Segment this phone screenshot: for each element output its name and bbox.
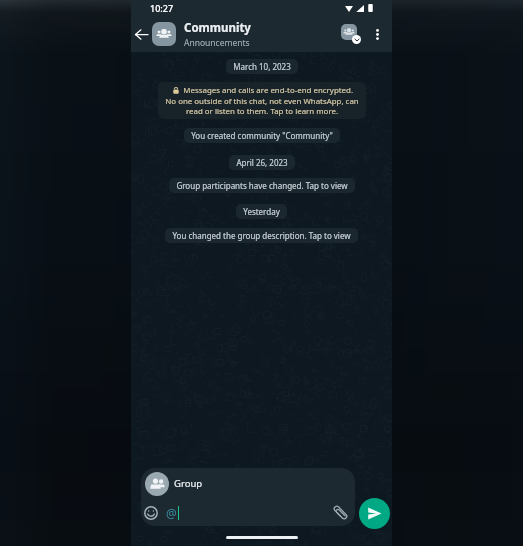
staticText: March 10, 2023 — [233, 61, 291, 72]
button[interactable]: Messages and calls are end-to-end encryp… — [158, 82, 366, 119]
staticText: Community — [184, 20, 251, 36]
button[interactable]: You changed the group description. Tap t… — [165, 228, 358, 243]
button[interactable]: Emoji — [141, 503, 160, 522]
button[interactable]: Switch group — [338, 21, 364, 47]
staticText: @ — [166, 505, 177, 521]
button[interactable]: Group participants have changed. Tap to … — [169, 178, 355, 193]
staticText: You changed the group description. Tap t… — [172, 230, 351, 241]
staticText: Announcements — [184, 37, 250, 49]
button[interactable]: You created community "Community" — [184, 128, 340, 143]
staticText: 10:27 — [150, 2, 174, 14]
button[interactable]: Send — [359, 498, 390, 529]
button[interactable]: Back — [133, 26, 149, 42]
button[interactable]: March 10, 2023 — [226, 59, 298, 74]
staticText: Messages and calls are end-to-end encryp… — [162, 85, 362, 116]
button[interactable]: Community — [184, 20, 338, 49]
button[interactable]: Yesterday — [236, 204, 287, 219]
staticText: April 26, 2023 — [236, 157, 288, 168]
staticText: Group participants have changed. Tap to … — [176, 180, 348, 191]
button[interactable]: Attach — [332, 504, 349, 521]
button[interactable]: More options — [367, 24, 387, 44]
staticText: You created community "Community" — [191, 130, 333, 141]
staticText: Group — [174, 477, 203, 490]
staticText: Yesterday — [243, 206, 280, 217]
button[interactable]: Community avatar — [152, 22, 176, 46]
button[interactable]: April 26, 2023 — [229, 155, 295, 170]
